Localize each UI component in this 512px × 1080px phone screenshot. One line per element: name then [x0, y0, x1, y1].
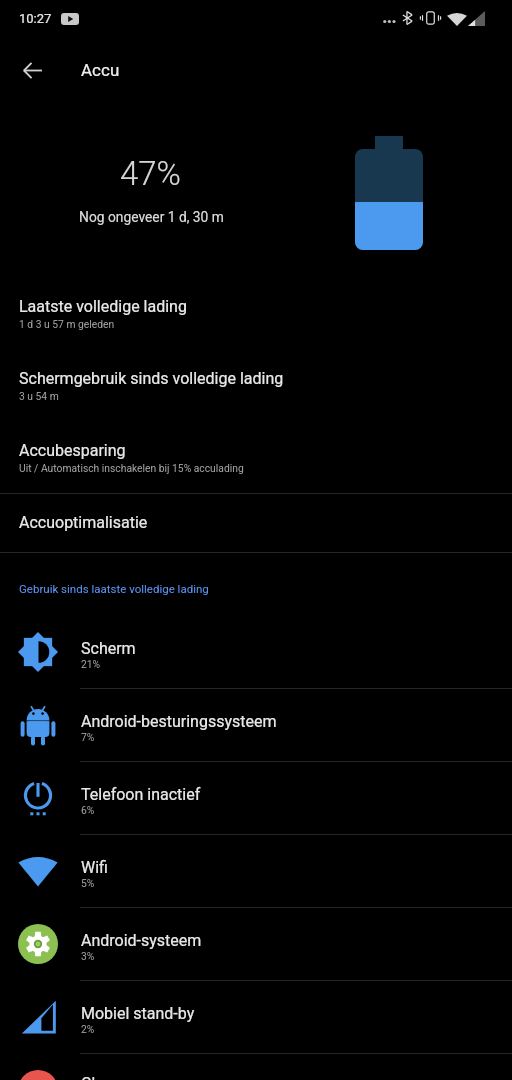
- staticText: 10:27: [19, 11, 52, 26]
- button[interactable]: Telefoon inactief: [0, 762, 512, 835]
- staticText: Uit / Automatisch inschakelen bij 15% ac…: [19, 462, 244, 474]
- staticText: Accubesparing: [19, 441, 126, 460]
- button[interactable]: [0, 1054, 512, 1080]
- staticText: 2%: [81, 1023, 95, 1035]
- button[interactable]: Scherm: [0, 616, 512, 689]
- button[interactable]: Back: [8, 46, 56, 94]
- staticText: 21%: [81, 658, 101, 670]
- button[interactable]: Mobiel stand-by: [0, 981, 512, 1054]
- staticText: 6%: [81, 804, 95, 816]
- staticText: 1 d 3 u 57 m geleden: [19, 318, 115, 330]
- staticText: Schermgebruik sinds volledige lading: [19, 369, 284, 388]
- staticText: Scherm: [81, 639, 136, 658]
- staticText: Mobiel stand-by: [81, 1004, 195, 1023]
- staticText: Accuoptimalisatie: [19, 513, 148, 532]
- staticText: Laatste volledige lading: [19, 297, 187, 316]
- button[interactable]: Wifi: [0, 835, 512, 908]
- staticText: 5%: [81, 877, 95, 889]
- button[interactable]: Android-besturingssysteem: [0, 689, 512, 762]
- staticText: 3%: [81, 950, 95, 962]
- staticText: Nog ongeveer 1 d, 30 m: [79, 209, 224, 225]
- button[interactable]: Accuoptimalisatie: [0, 493, 512, 551]
- staticText: Android-besturingssysteem: [81, 712, 277, 731]
- button[interactable]: Accubesparing: [0, 429, 512, 485]
- staticText: 7%: [81, 731, 95, 743]
- staticText: Android-systeem: [81, 931, 202, 950]
- staticText: Accu: [81, 60, 120, 80]
- button[interactable]: Android-systeem: [0, 908, 512, 981]
- staticText: Gebruik sinds laatste volledige lading: [19, 582, 209, 595]
- staticText: Chrome: [81, 1074, 138, 1080]
- staticText: Wifi: [81, 858, 108, 877]
- staticText: 3 u 54 m: [19, 390, 59, 402]
- staticText: 47%: [120, 154, 182, 193]
- button[interactable]: Laatste volledige lading: [0, 285, 512, 341]
- staticText: Telefoon inactief: [81, 785, 201, 804]
- button[interactable]: Schermgebruik sinds volledige lading: [0, 357, 512, 413]
